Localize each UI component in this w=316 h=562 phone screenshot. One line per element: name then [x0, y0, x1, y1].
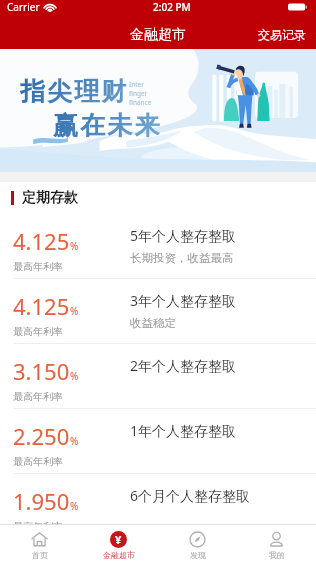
staticText: Carrier — [7, 0, 40, 14]
staticText: 金融超市 — [130, 26, 186, 44]
staticText: 4.125 — [13, 291, 70, 321]
staticText: 指尖理财 — [20, 76, 129, 107]
staticText: 最高年利率 — [13, 455, 63, 468]
staticText: 定期存款 — [22, 189, 78, 207]
staticText: ¥ — [115, 532, 122, 547]
other: 我的 — [268, 531, 285, 548]
staticText: % — [70, 434, 79, 448]
staticText: % — [70, 499, 79, 513]
staticText: finance — [129, 98, 152, 107]
staticText: Inter — [129, 80, 144, 89]
staticText: 长期投资，收益最高 — [130, 251, 234, 265]
staticText: 金融超市 — [103, 550, 135, 560]
staticText: 6个月个人整存整取 — [130, 486, 251, 505]
button[interactable]: 发现 — [158, 528, 237, 560]
button[interactable]: 1.950 — [0, 474, 316, 538]
button[interactable]: 2.250 — [0, 409, 316, 473]
staticText: 最高年利率 — [13, 325, 63, 338]
other: 发现 — [189, 531, 206, 548]
button[interactable]: 4.125 — [0, 214, 316, 278]
staticText: 2年个人整存整取 — [130, 356, 237, 375]
staticText: 1年个人整存整取 — [130, 421, 237, 440]
staticText: 发现 — [190, 550, 206, 560]
button[interactable]: 首页 — [0, 528, 79, 560]
staticText: 我的 — [269, 550, 285, 560]
staticText: finger — [129, 89, 148, 98]
staticText: 1.950 — [13, 486, 70, 516]
other: 首页 — [31, 531, 48, 548]
staticText: 最高年利率 — [13, 520, 63, 533]
other: 金融超市 — [110, 531, 127, 548]
staticText: 最高年利率 — [13, 390, 63, 403]
staticText: 4.125 — [13, 226, 70, 256]
staticText: 交易记录 — [258, 27, 306, 42]
staticText: 2:02 PM — [153, 0, 191, 14]
button[interactable]: 4.125 — [0, 279, 316, 343]
button[interactable]: 我的 — [237, 528, 316, 560]
staticText: 5年个人整存整取 — [130, 226, 237, 245]
staticText: 最高年利率 — [13, 260, 63, 273]
staticText: % — [70, 304, 79, 318]
staticText: 3.150 — [13, 356, 70, 386]
staticText: 首页 — [32, 550, 48, 560]
button[interactable]: 3.150 — [0, 344, 316, 408]
staticText: 赢在未来 — [53, 110, 162, 141]
staticText: 3年个人整存整取 — [130, 291, 237, 310]
button[interactable]: 金融超市 — [79, 528, 158, 560]
button[interactable]: 交易记录 — [248, 27, 316, 42]
staticText: % — [70, 369, 79, 383]
staticText: 2.250 — [13, 421, 70, 451]
staticText: % — [70, 239, 79, 253]
staticText: 收益稳定 — [130, 316, 176, 330]
